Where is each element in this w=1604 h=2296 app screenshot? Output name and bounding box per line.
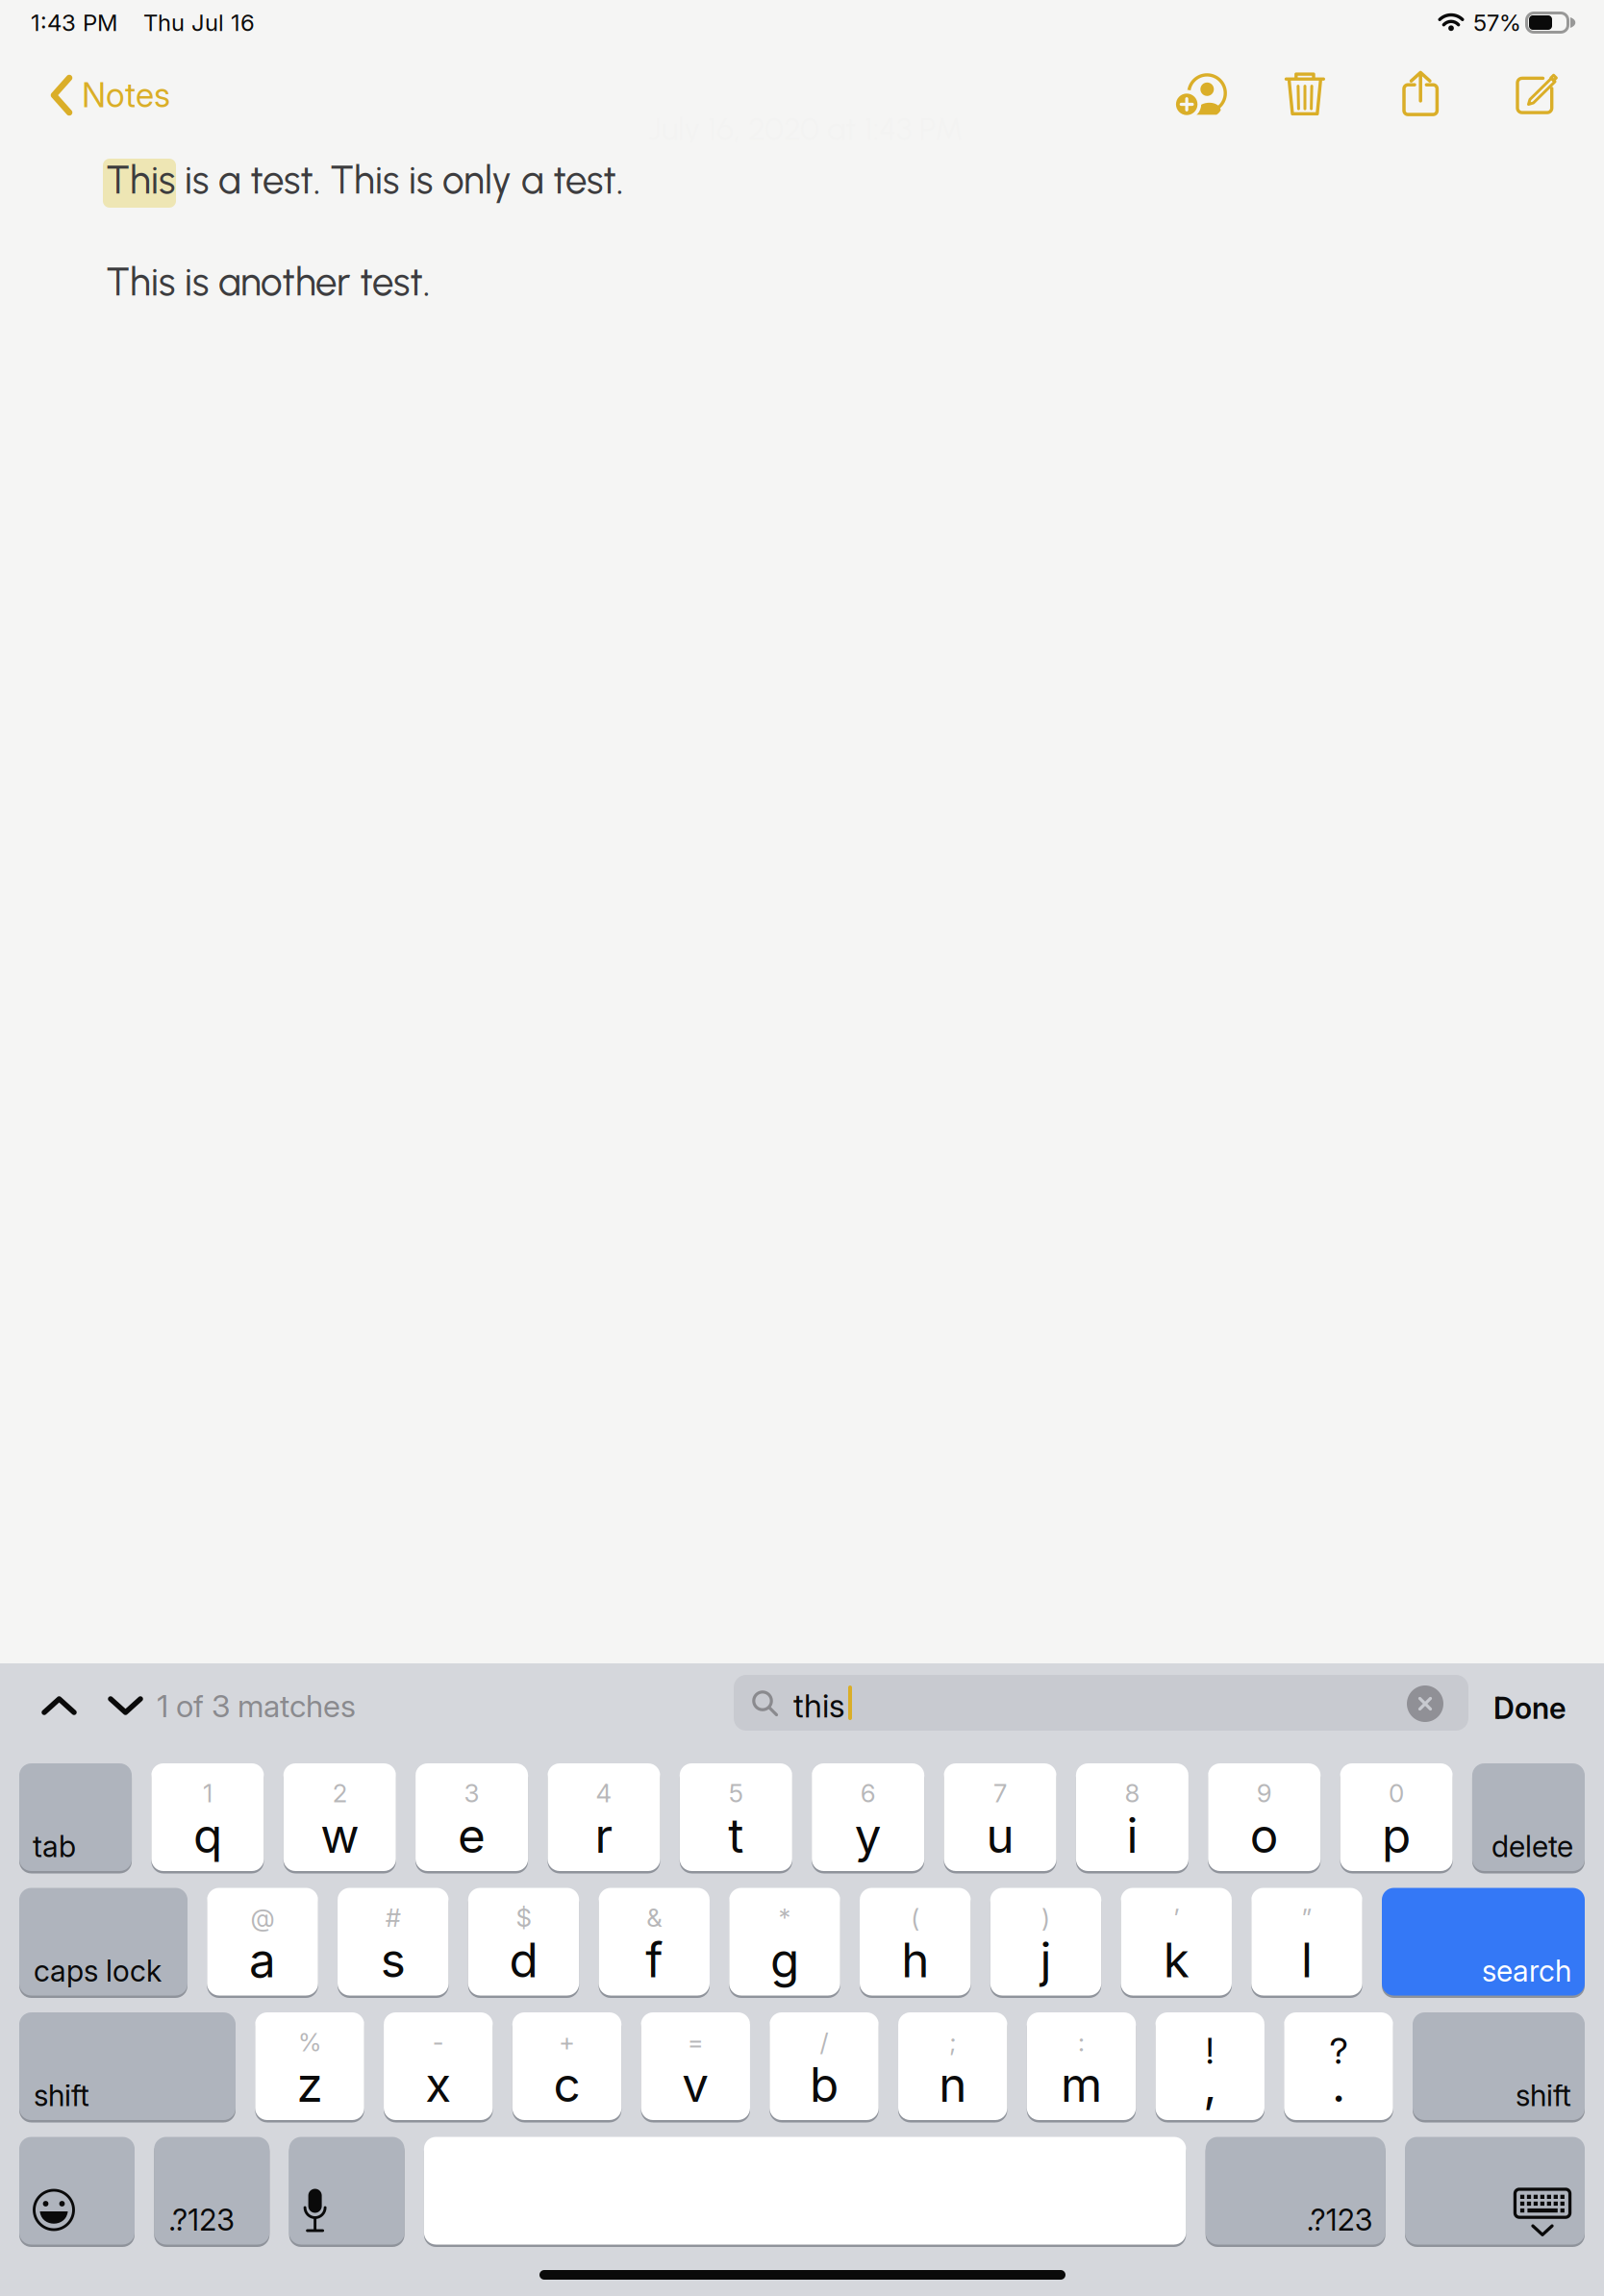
button[interactable]: Hide Keyboard [1405,2137,1585,2247]
staticText: w [320,1807,359,1864]
button[interactable]: shift [1413,2012,1585,2122]
staticText: ” [1302,1903,1312,1933]
staticText: y [855,1807,882,1864]
staticText: 57% [1473,9,1521,37]
button[interactable]: Add People [1157,54,1246,134]
staticText: + [559,2027,575,2057]
staticText: 6 [860,1778,876,1808]
button[interactable]: x [384,2012,493,2122]
button[interactable]: c [512,2012,621,2122]
staticText: .?123 [1307,2202,1373,2238]
button[interactable]: e [416,1763,528,1873]
button[interactable]: .?123 [154,2137,270,2247]
staticText: - [433,2027,444,2057]
button[interactable]: Notes [35,62,204,133]
button[interactable]: Share [1383,51,1458,135]
button[interactable]: shift [19,2012,236,2122]
button[interactable]: f [599,1888,710,1998]
button[interactable]: Delete [1265,51,1344,135]
button[interactable]: . [1284,2012,1393,2122]
staticText: , [1203,2056,1217,2113]
staticText: : [1078,2027,1085,2057]
button[interactable]: i [1076,1763,1189,1873]
staticText: tab [33,1829,76,1864]
button[interactable]: n [898,2012,1007,2122]
staticText: search [1482,1953,1571,1989]
staticText: q [193,1807,222,1864]
staticText: = [687,2027,704,2057]
button[interactable]: tab [19,1763,132,1873]
staticText: shift [1516,2078,1571,2113]
button[interactable]: Next match [90,1679,161,1733]
button[interactable]: b [770,2012,879,2122]
button[interactable]: delete [1472,1763,1585,1873]
staticText: 1 [203,1778,212,1808]
staticText: 3 [464,1778,479,1808]
staticText: this [793,1686,845,1725]
button[interactable]: j [990,1888,1101,1998]
staticText: caps lock [34,1953,162,1989]
staticText: v [682,2056,709,2113]
button[interactable]: z [255,2012,364,2122]
button[interactable]: g [729,1888,840,1998]
staticText: * [778,1903,791,1933]
button[interactable]: Dictation [289,2137,404,2247]
button[interactable]: v [641,2012,750,2122]
button[interactable]: Previous match [24,1679,94,1733]
button[interactable]: Emoji [19,2137,135,2247]
staticText: ’ [1173,1903,1179,1933]
staticText: m [1061,2056,1102,2113]
staticText: & [647,1903,662,1933]
button[interactable]: , [1155,2012,1264,2122]
staticText: ( [911,1903,920,1933]
staticText: l [1301,1931,1313,1989]
button[interactable]: u [944,1763,1056,1873]
staticText: . [1332,2056,1345,2113]
button[interactable]: t [680,1763,792,1873]
button[interactable]: Search note [734,1675,1468,1731]
staticText: Thu Jul 16 [143,9,255,37]
button[interactable]: New Note [1496,56,1577,134]
staticText: 8 [1125,1778,1140,1808]
button[interactable]: Clear search [1393,1672,1457,1735]
staticText: e [458,1807,486,1864]
staticText: ? [1329,2029,1348,2073]
button[interactable]: .?123 [1206,2137,1385,2247]
staticText: ; [949,2027,956,2057]
staticText: g [770,1931,799,1989]
staticText: / [820,2027,828,2057]
button[interactable]: r [548,1763,660,1873]
staticText: This is another test. [106,259,430,305]
button[interactable]: h [860,1888,971,1998]
staticText: d [509,1931,538,1989]
button[interactable]: d [468,1888,579,1998]
staticText: o [1250,1807,1279,1864]
staticText: p [1382,1807,1411,1864]
button[interactable]: q [151,1763,264,1873]
staticText: 2 [332,1778,347,1808]
button[interactable]: m [1027,2012,1136,2122]
button[interactable]: caps lock [19,1888,188,1998]
staticText: t [728,1807,744,1864]
staticText: ! [1206,2029,1214,2073]
staticText: 7 [993,1778,1007,1808]
staticText: h [901,1931,929,1989]
button[interactable]: y [812,1763,924,1873]
button[interactable]: search [1382,1888,1585,1998]
button[interactable]: p [1340,1763,1453,1873]
button[interactable]: l [1251,1888,1362,1998]
button[interactable]: w [283,1763,396,1873]
staticText: s [381,1931,406,1989]
button[interactable]: a [207,1888,318,1998]
staticText: k [1163,1931,1189,1989]
button[interactable]: Done [1480,1679,1580,1737]
staticText: n [939,2056,967,2113]
staticText: 9 [1257,1778,1272,1808]
staticText: f [646,1931,663,1989]
button[interactable]: s [338,1888,449,1998]
staticText: z [297,2056,323,2113]
button[interactable]: k [1121,1888,1232,1998]
staticText: This is a test. This is only a test. [106,157,623,203]
button[interactable]: space [424,2137,1186,2247]
button[interactable]: o [1208,1763,1321,1873]
